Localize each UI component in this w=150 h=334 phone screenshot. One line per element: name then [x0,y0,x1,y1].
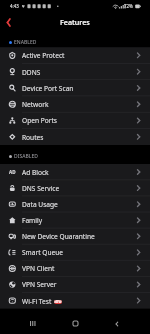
button[interactable]: Family [0,212,150,228]
staticText: Data Usage [22,200,58,209]
staticText: Wi-Fi Test [22,297,52,306]
staticText: Ad Block [22,168,49,177]
staticText: AD [9,169,16,175]
staticText: DISABLED [14,153,38,160]
button[interactable]: Smart Queue [0,244,150,260]
button[interactable]: VPN Client [0,260,150,276]
staticText: NEW [54,300,62,304]
button[interactable]: Open Ports [0,112,150,128]
staticText: VPN Server [22,280,57,289]
button[interactable]: Routes [0,129,150,145]
staticText: VPN Client [22,264,55,273]
staticText: Smart Queue [22,248,64,257]
button[interactable]: Home [67,315,84,332]
button[interactable]: Wi-Fi Test [0,293,150,309]
staticText: Open Ports [22,116,57,125]
button[interactable]: Network [0,96,150,112]
staticText: Device Port Scan [22,84,74,93]
button[interactable]: Device Port Scan [0,80,150,96]
staticText: 4:43 [10,3,19,9]
button[interactable]: DNS Service [0,180,150,196]
button[interactable]: DDNS [0,64,150,80]
button[interactable]: Recents [24,315,41,332]
button[interactable]: VPN Server [0,276,150,292]
staticText: ENABLED [14,39,37,46]
staticText: DNS Service [22,184,60,193]
button[interactable]: Back [0,14,16,30]
button[interactable]: Active Protect [0,47,150,63]
staticText: Routes [22,133,44,142]
staticText: 72% [124,3,133,9]
staticText: Family [22,216,43,225]
staticText: New Device Quarantine [22,232,95,241]
button[interactable]: Ad Block [0,164,150,180]
button[interactable]: Back [108,315,125,332]
button[interactable]: New Device Quarantine [0,228,150,244]
button[interactable]: Data Usage [0,196,150,212]
staticText: Features [60,17,90,27]
staticText: Network [22,100,49,109]
staticText: Active Protect [22,51,65,60]
staticText: DDNS [22,68,41,77]
